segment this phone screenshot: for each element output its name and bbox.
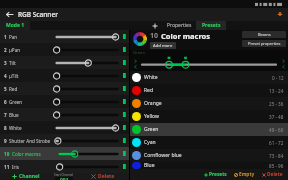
staticText: Green bbox=[144, 126, 159, 133]
button[interactable]: Properties bbox=[162, 21, 196, 30]
button[interactable]: Beams bbox=[242, 31, 286, 38]
staticText: Beams bbox=[258, 32, 271, 37]
staticText: Red bbox=[144, 87, 154, 94]
staticText: 001 bbox=[60, 177, 69, 180]
staticText: 7 bbox=[4, 112, 7, 118]
staticText: Channel bbox=[19, 173, 40, 180]
staticText: White bbox=[9, 125, 22, 131]
button[interactable]: Start Channel bbox=[51, 173, 77, 180]
staticText: 11 bbox=[4, 164, 10, 170]
staticText: Add more bbox=[153, 43, 173, 49]
button[interactable]: Yellow bbox=[130, 110, 288, 123]
staticText: 73 - 84 bbox=[269, 153, 284, 159]
button[interactable]: Orange bbox=[130, 97, 288, 110]
staticText: Red bbox=[9, 86, 18, 92]
button[interactable]: Step bbox=[278, 59, 288, 69]
button[interactable]: Channel bbox=[0, 173, 51, 180]
staticText: Blue bbox=[9, 112, 19, 118]
staticText: Presets bbox=[202, 22, 221, 29]
staticText: 5 bbox=[4, 86, 7, 92]
button[interactable]: 11 bbox=[0, 160, 129, 173]
staticText: 13 - 24 bbox=[269, 88, 284, 94]
staticText: Shutter And Strobe bbox=[9, 138, 51, 144]
staticText: Delete bbox=[267, 171, 283, 178]
staticText: 6 bbox=[4, 99, 7, 105]
staticText: 0 - 12 bbox=[272, 75, 284, 81]
staticText: Properties bbox=[167, 22, 192, 29]
staticText: Green bbox=[133, 50, 146, 56]
staticText: 4 bbox=[4, 73, 7, 79]
staticText: 85 - 96 bbox=[269, 163, 284, 169]
staticText: Color macros bbox=[161, 31, 211, 41]
staticText: Cornflower blue bbox=[144, 152, 182, 159]
button[interactable]: Mode 1 bbox=[0, 21, 30, 30]
button[interactable]: 9 bbox=[0, 134, 129, 147]
staticText: 2 bbox=[4, 47, 7, 53]
button[interactable]: Red bbox=[130, 84, 288, 97]
button[interactable]: Cyan bbox=[130, 136, 288, 149]
button[interactable]: Back bbox=[0, 8, 18, 21]
staticText: 10 bbox=[4, 151, 10, 157]
staticText: RGB Scanner bbox=[18, 10, 58, 19]
button[interactable]: Preset properties bbox=[242, 40, 286, 47]
staticText: Mode 1 bbox=[6, 22, 25, 29]
staticText: White bbox=[144, 74, 158, 81]
button[interactable]: Step bbox=[130, 59, 140, 69]
staticText: 37 - 48 bbox=[269, 114, 284, 120]
staticText: Tilt bbox=[9, 60, 16, 66]
staticText: Blue bbox=[144, 162, 155, 169]
staticText: Delete bbox=[98, 173, 115, 180]
staticText: Orange bbox=[144, 100, 162, 107]
staticText: 9 bbox=[4, 138, 7, 144]
staticText: Green bbox=[9, 99, 23, 105]
staticText: Color macros bbox=[12, 151, 41, 157]
button[interactable]: 4 bbox=[0, 69, 129, 82]
staticText: 8 bbox=[4, 125, 7, 131]
staticText: Preset properties bbox=[248, 41, 281, 46]
staticText: Empty bbox=[239, 171, 255, 178]
staticText: Yellow bbox=[144, 113, 159, 120]
button[interactable]: 3 bbox=[0, 56, 129, 69]
button[interactable]: Cornflower blue bbox=[130, 149, 288, 162]
button[interactable]: 5 bbox=[0, 82, 129, 95]
button[interactable]: Delete bbox=[77, 173, 129, 180]
button[interactable]: 10 bbox=[0, 147, 129, 160]
staticText: Presets bbox=[209, 171, 227, 178]
button[interactable]: Green bbox=[130, 123, 288, 136]
button[interactable]: 6 bbox=[0, 95, 129, 108]
staticText: 10 bbox=[150, 31, 159, 41]
staticText: 3 bbox=[4, 60, 7, 66]
button[interactable]: Blue bbox=[130, 162, 288, 169]
staticText: µTilt bbox=[9, 73, 19, 79]
button[interactable]: 1 bbox=[0, 30, 129, 43]
staticText: µPan bbox=[9, 47, 21, 53]
button[interactable]: Add more bbox=[150, 42, 176, 49]
button[interactable]: Presets bbox=[196, 21, 226, 30]
button[interactable]: 7 bbox=[0, 108, 129, 121]
button[interactable]: White bbox=[130, 71, 288, 84]
button[interactable]: Empty bbox=[232, 171, 257, 178]
staticText: Iris bbox=[12, 164, 19, 170]
staticText: Start Channel bbox=[54, 173, 74, 177]
button[interactable]: 8 bbox=[0, 121, 129, 134]
staticText: Pan bbox=[9, 34, 18, 40]
staticText: 61 - 72 bbox=[269, 140, 284, 146]
button[interactable]: 2 bbox=[0, 43, 129, 56]
button[interactable]: Delete bbox=[260, 171, 285, 178]
button[interactable]: Presets bbox=[202, 171, 229, 178]
staticText: Cyan bbox=[144, 139, 156, 146]
staticText: 25 - 36 bbox=[269, 101, 284, 107]
button[interactable]: Add mode bbox=[148, 21, 162, 30]
staticText: 49 - 60 bbox=[269, 127, 284, 133]
staticText: 1 bbox=[4, 34, 7, 40]
button[interactable]: Record bbox=[272, 8, 288, 21]
button[interactable] bbox=[133, 32, 147, 46]
